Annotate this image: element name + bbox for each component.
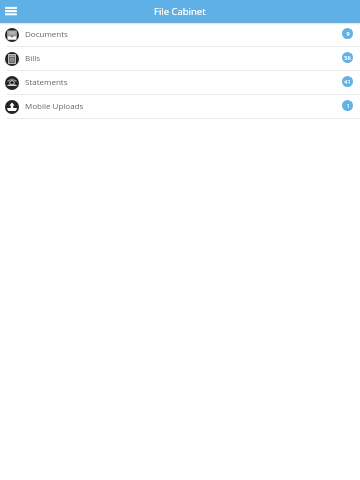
staticText: Documents bbox=[25, 28, 68, 39]
button[interactable]: Open navigation menu bbox=[3, 3, 19, 19]
staticText: 41 bbox=[344, 78, 351, 85]
staticText: 9 bbox=[346, 30, 350, 37]
button[interactable]: Mobile Uploads bbox=[0, 95, 360, 118]
button[interactable]: Documents bbox=[0, 23, 360, 46]
staticText: Bills bbox=[25, 52, 41, 63]
staticText: 1 bbox=[346, 102, 350, 109]
staticText: Mobile Uploads bbox=[25, 100, 84, 111]
staticText: Statements bbox=[25, 76, 68, 87]
staticText: File Cabinet bbox=[154, 5, 206, 18]
button[interactable]: Statements bbox=[0, 71, 360, 94]
button[interactable]: Bills bbox=[0, 47, 360, 70]
staticText: 56 bbox=[344, 54, 351, 61]
